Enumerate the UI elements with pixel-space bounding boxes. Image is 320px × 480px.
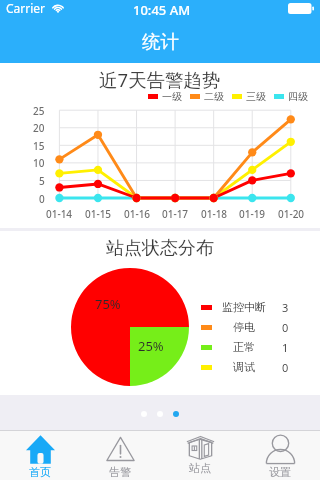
staticText: 1 [282, 340, 289, 355]
staticText: 0 [282, 360, 289, 375]
staticText: 75% [95, 295, 121, 313]
staticText: 25% [138, 337, 164, 355]
staticText: 三级 [246, 90, 266, 103]
staticText: 调试 [233, 360, 255, 374]
staticText: 01-14 [46, 207, 73, 221]
staticText: 站点状态分布 [106, 237, 214, 260]
staticText: 01-15 [85, 207, 112, 221]
staticText: 3 [282, 300, 289, 315]
staticText: 监控中断 [222, 300, 266, 314]
staticText: 01-17 [162, 207, 189, 221]
staticText: 01-20 [278, 207, 305, 221]
staticText: Carrier [6, 0, 46, 16]
staticText: 正常 [233, 340, 255, 354]
staticText: 站点 [189, 461, 211, 475]
staticText: 0 [282, 320, 289, 335]
staticText: 设置 [269, 465, 291, 479]
staticText: 二级 [204, 90, 224, 103]
button[interactable]: Settings [240, 431, 320, 480]
staticText: 统计 [142, 30, 179, 53]
staticText: 0 [39, 192, 45, 206]
button[interactable]: Home [0, 431, 80, 480]
button[interactable]: Sites [160, 431, 240, 480]
staticText: 01-19 [239, 207, 266, 221]
staticText: 5 [39, 174, 45, 188]
staticText: 01-16 [124, 207, 151, 221]
staticText: 首页 [29, 465, 51, 479]
staticText: 25 [33, 104, 45, 118]
staticText: 15 [33, 139, 45, 153]
staticText: 10:45 AM [133, 1, 191, 19]
staticText: 10 [33, 156, 45, 170]
staticText: 告警 [109, 465, 131, 479]
button[interactable]: Alarms [80, 431, 160, 480]
staticText: 一级 [162, 90, 182, 103]
staticText: 近7天告警趋势 [99, 67, 221, 92]
staticText: 20 [33, 121, 45, 135]
staticText: 01-18 [201, 207, 228, 221]
staticText: 停电 [233, 320, 255, 334]
staticText: 四级 [288, 90, 308, 103]
